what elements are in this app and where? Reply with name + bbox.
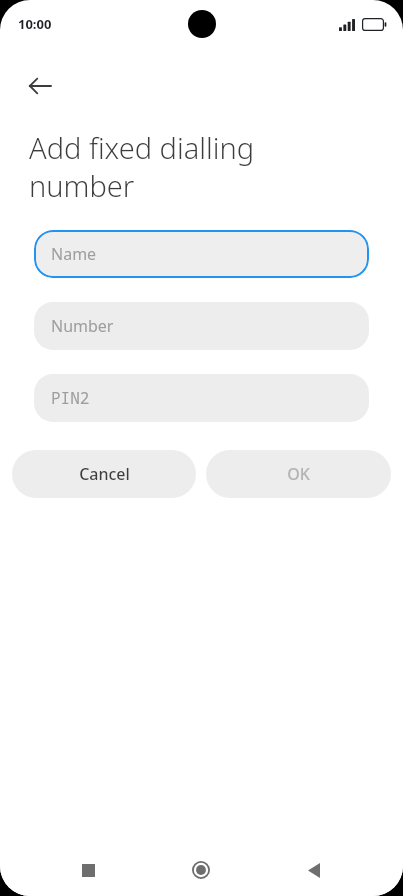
button[interactable]: Back — [14, 60, 66, 112]
staticText: OK — [287, 463, 310, 485]
button[interactable]: Recent apps — [64, 846, 112, 894]
button[interactable]: PIN2 — [34, 374, 369, 422]
button[interactable]: OK — [206, 450, 391, 498]
staticText: Add fixed dialling number — [29, 128, 363, 205]
staticText: PIN2 — [51, 387, 90, 409]
staticText: Name — [51, 243, 97, 265]
button[interactable]: Home — [177, 846, 225, 894]
staticText: Cancel — [79, 463, 130, 485]
button[interactable]: Cancel — [12, 450, 196, 498]
button[interactable]: Back — [290, 846, 338, 894]
staticText: Number — [51, 315, 114, 337]
button[interactable]: Number — [34, 302, 369, 350]
button[interactable]: Name — [34, 230, 369, 278]
staticText: 10:00 — [18, 15, 52, 33]
